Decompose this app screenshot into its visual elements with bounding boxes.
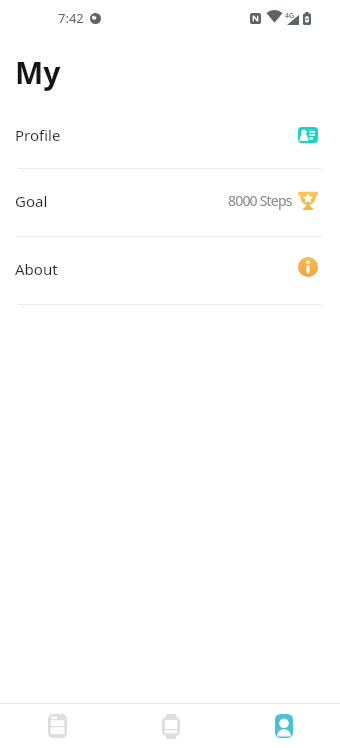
staticText: 4G <box>285 11 295 21</box>
staticText: About <box>15 259 58 279</box>
staticText: My <box>15 52 61 93</box>
button[interactable] <box>114 704 227 748</box>
button[interactable]: Profile <box>0 101 340 168</box>
button[interactable]: About <box>0 237 340 304</box>
staticText: 7:42 <box>58 9 84 27</box>
staticText: 8000 Steps <box>228 191 292 210</box>
staticText: Goal <box>15 191 48 211</box>
button[interactable] <box>0 704 114 748</box>
button[interactable]: Goal <box>0 169 340 236</box>
button[interactable] <box>227 704 340 748</box>
staticText: Profile <box>15 125 61 145</box>
